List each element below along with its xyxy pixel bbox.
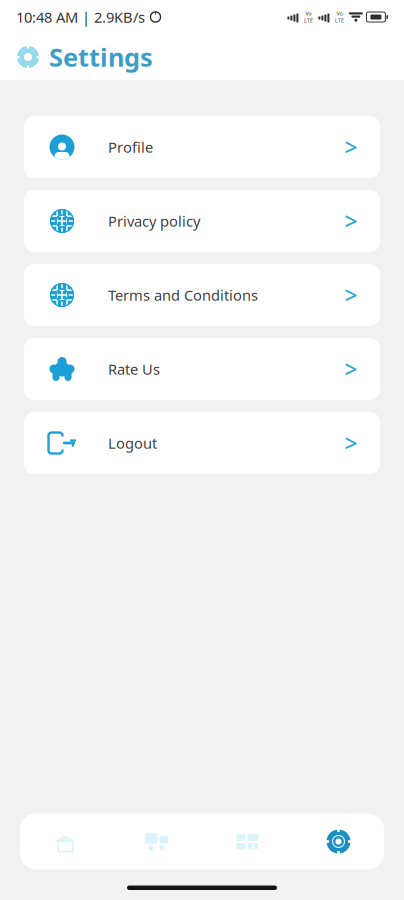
- button[interactable]: Rate Us: [24, 338, 380, 400]
- staticText: 10:48 AM | 2.9KB/s: [16, 7, 145, 27]
- button[interactable]: Deliveries: [111, 813, 202, 869]
- staticText: Vo: [336, 10, 342, 17]
- staticText: Vo: [305, 10, 311, 17]
- staticText: LTE: [304, 17, 313, 24]
- button[interactable]: Settings: [0, 34, 404, 80]
- button[interactable]: Logout: [24, 412, 380, 474]
- button[interactable]: Privacy policy: [24, 190, 380, 252]
- staticText: >: [344, 280, 357, 310]
- button[interactable]: Profile: [24, 116, 380, 178]
- staticText: Terms and Conditions: [108, 285, 258, 305]
- staticText: Settings: [49, 40, 153, 74]
- staticText: >: [344, 354, 357, 384]
- staticText: >: [344, 206, 357, 236]
- staticText: >: [344, 132, 357, 162]
- staticText: LTE: [335, 17, 344, 24]
- button[interactable]: Home: [20, 813, 111, 869]
- button[interactable]: Settings: [293, 813, 384, 869]
- staticText: >: [344, 428, 357, 458]
- button[interactable]: Terms and Conditions: [24, 264, 380, 326]
- staticText: Rate Us: [108, 359, 160, 379]
- staticText: Profile: [108, 137, 153, 157]
- staticText: Logout: [108, 433, 157, 453]
- staticText: Privacy policy: [108, 211, 200, 231]
- button[interactable]: News: [202, 813, 293, 869]
